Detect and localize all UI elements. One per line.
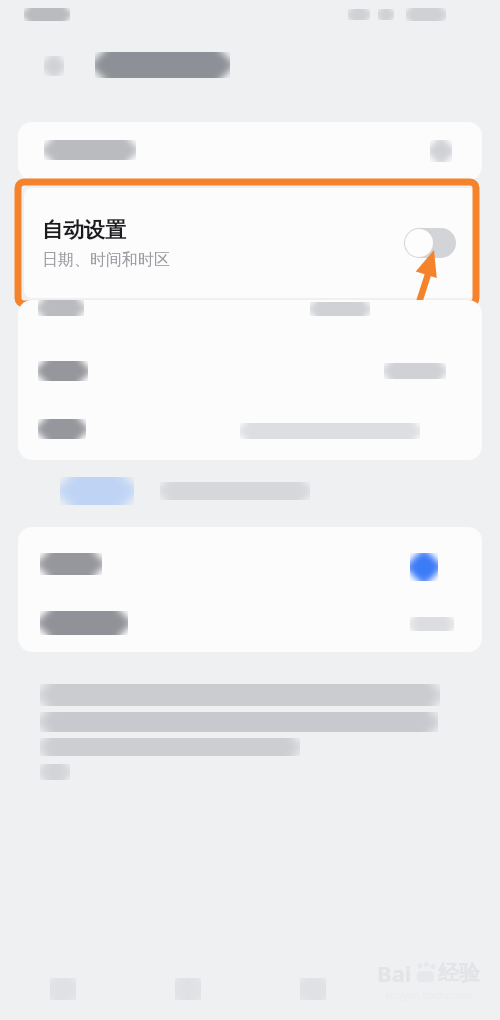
- button[interactable]: [18, 122, 482, 180]
- button[interactable]: 自动设置开关: [404, 228, 456, 258]
- button[interactable]: [18, 345, 482, 397]
- staticText: Bai: [377, 958, 412, 988]
- button[interactable]: [125, 958, 250, 1020]
- button[interactable]: [18, 405, 482, 457]
- button[interactable]: [0, 958, 125, 1020]
- staticText: 自动设置: [42, 217, 126, 243]
- staticText: 经验: [438, 960, 480, 986]
- button[interactable]: [250, 958, 375, 1020]
- staticText: 日期、时间和时区: [42, 250, 170, 270]
- button[interactable]: Back: [34, 48, 74, 84]
- button[interactable]: [18, 535, 482, 595]
- button[interactable]: [18, 595, 482, 655]
